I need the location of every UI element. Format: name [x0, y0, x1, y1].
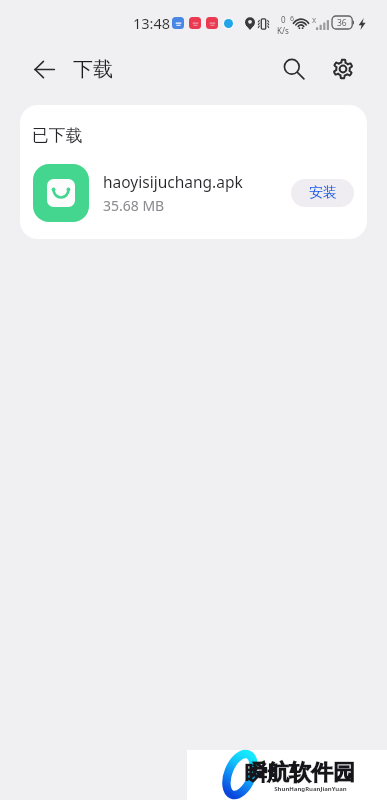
staticText: haoyisijuchang.apk	[103, 171, 243, 192]
staticText: 35.68 MB	[103, 196, 165, 215]
staticText: x	[312, 14, 317, 25]
staticText: 0	[281, 14, 286, 25]
staticText: 下载	[73, 57, 113, 82]
staticText: 13:48	[133, 13, 171, 33]
staticText: 36	[337, 17, 347, 29]
button[interactable]: haoyisijuchang.apk	[20, 160, 367, 226]
button[interactable]: Search	[274, 49, 314, 89]
staticText: K/s	[277, 25, 289, 36]
button[interactable]: 安装	[291, 179, 354, 207]
staticText: ShunHangRuanJianYuan	[274, 785, 347, 793]
button[interactable]: Settings	[323, 49, 363, 89]
staticText: 6	[290, 14, 295, 24]
staticText: 安装	[309, 184, 337, 202]
button[interactable]: Back	[26, 51, 62, 87]
staticText: 已下载	[32, 125, 83, 146]
staticText: 瞬航软件园	[245, 759, 355, 787]
